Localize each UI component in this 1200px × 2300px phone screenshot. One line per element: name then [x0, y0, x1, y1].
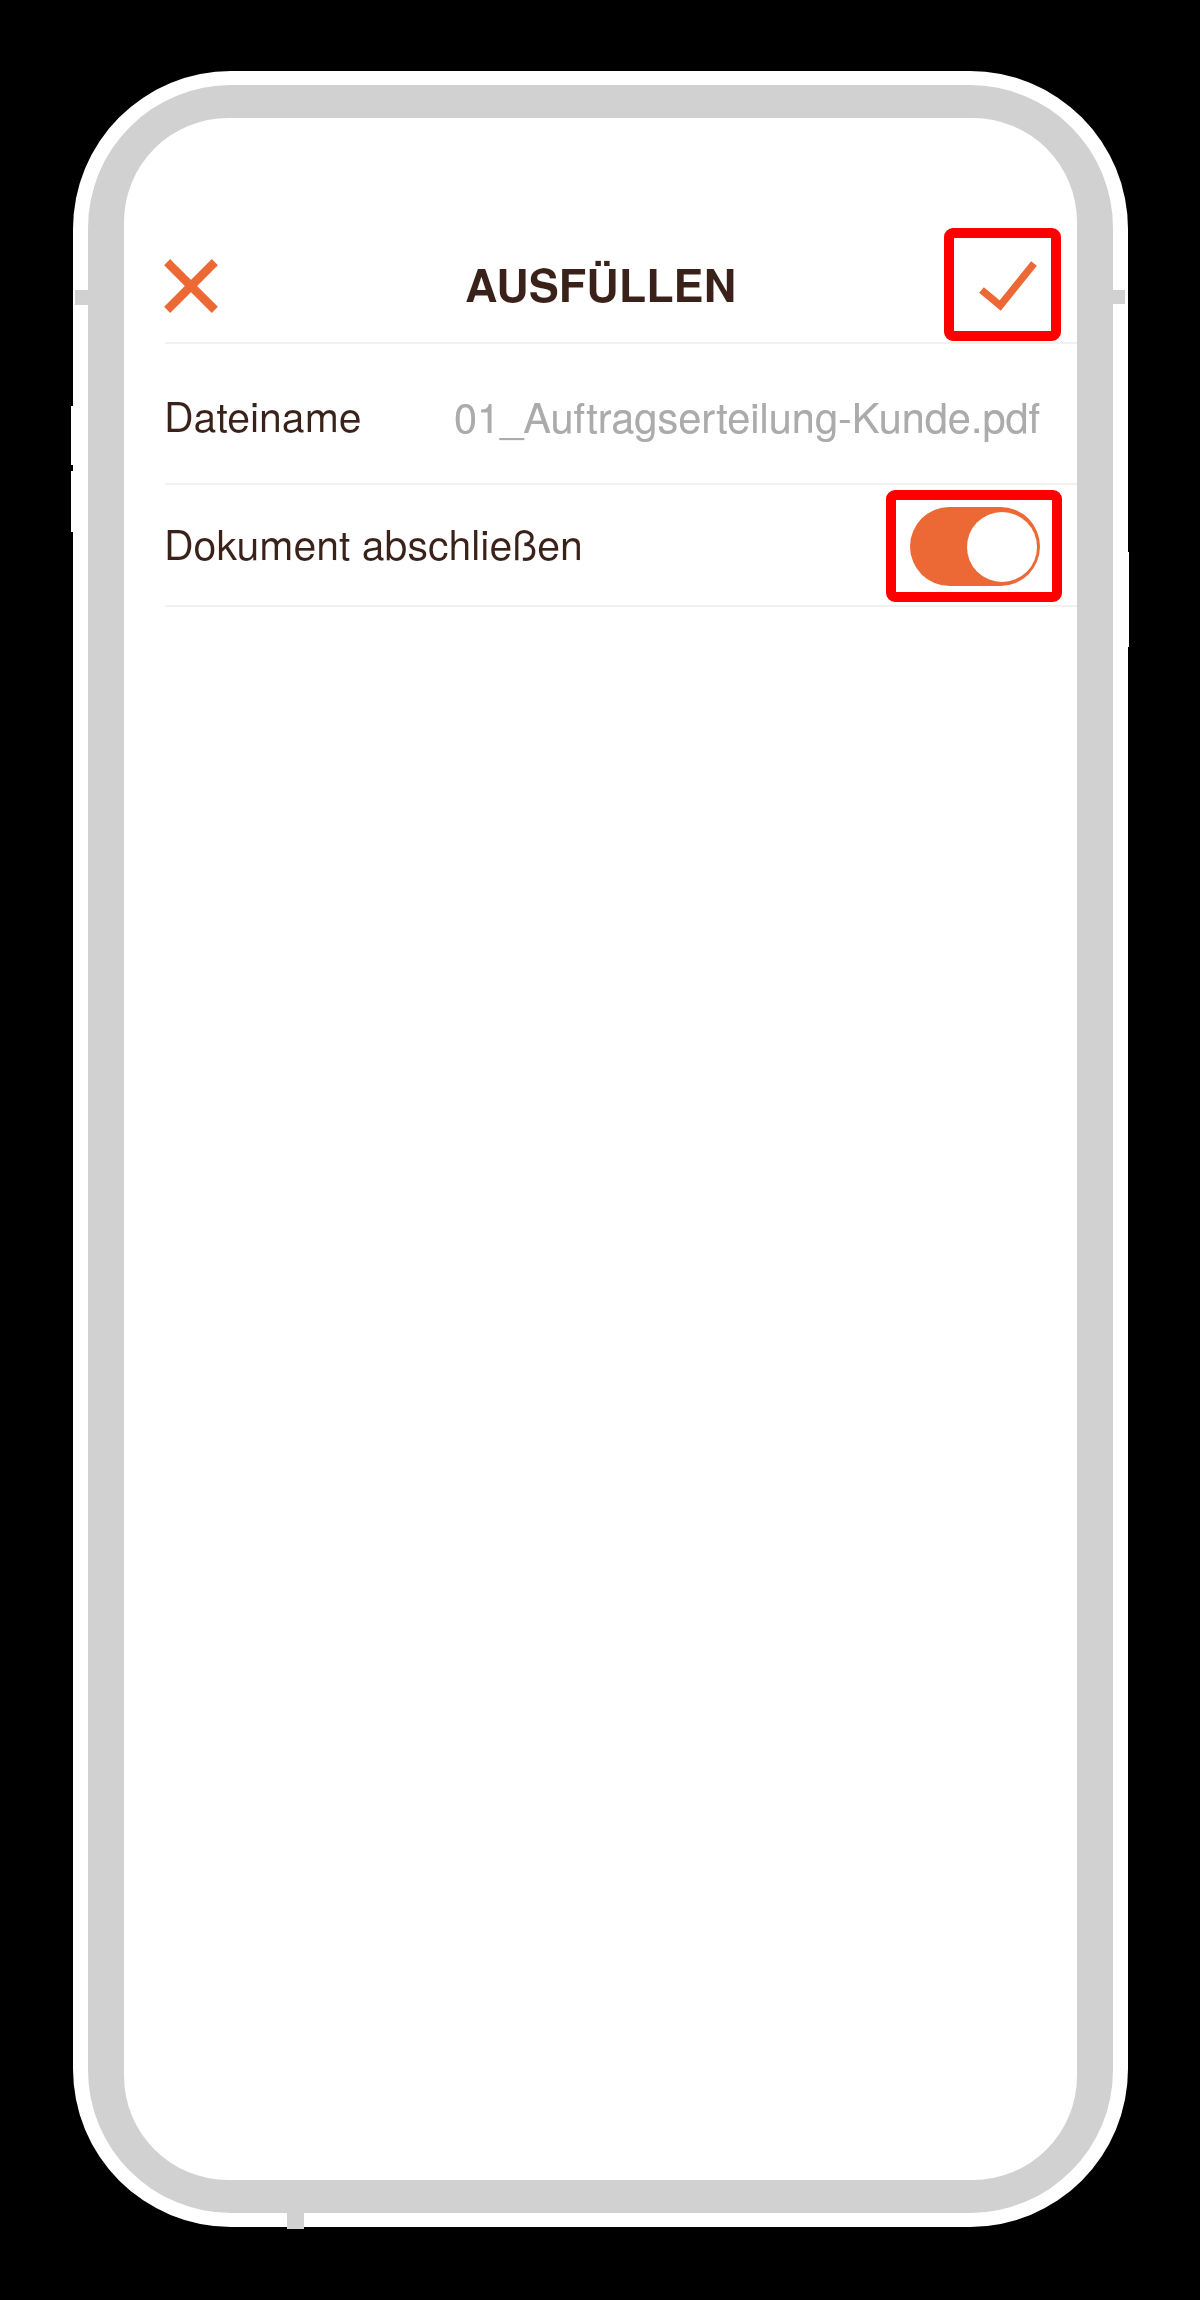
button[interactable]: Dokument abschließen: [124, 485, 1077, 605]
staticText: 01_Auftragserteilung-Kunde.pdf: [454, 385, 1041, 444]
staticText: AUSFÜLLEN: [465, 251, 737, 315]
button[interactable]: Close: [139, 234, 243, 338]
staticText: Dokument abschließen: [164, 513, 583, 572]
button[interactable]: Confirm: [944, 228, 1061, 341]
button[interactable]: Dokument abschliessen: [886, 490, 1062, 602]
staticText: Dateiname: [164, 385, 362, 444]
